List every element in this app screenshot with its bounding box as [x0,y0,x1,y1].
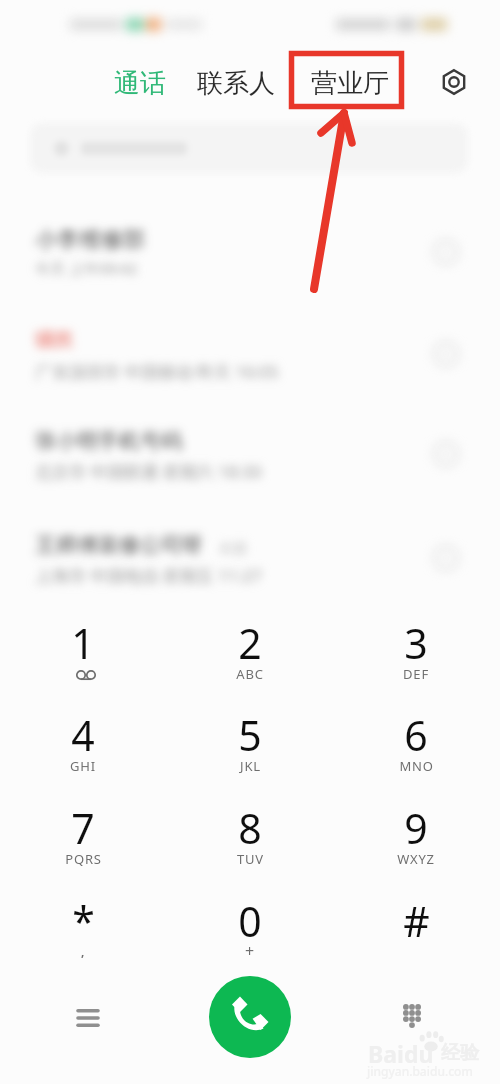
button[interactable]: Menu [67,997,108,1038]
staticText: 王师傅装修公司呀 [35,532,203,558]
staticText: 0 [238,893,262,949]
button[interactable]: Settings [438,66,470,98]
staticText: DEF [403,665,429,683]
staticText: 张小明手机号码 [35,428,182,454]
staticText: PQRS [65,850,102,868]
staticText: 1 [71,615,95,671]
staticText: 6 [404,707,428,763]
button[interactable]: 营业厅 [311,67,389,100]
button[interactable]: 2 [190,599,310,685]
staticText: * [72,893,95,949]
staticText: 5 [238,707,262,763]
button[interactable]: 骚扰 [0,310,500,410]
button[interactable]: 6 [356,691,476,777]
button[interactable]: 5 [190,691,310,777]
button[interactable]: 通话 [114,67,166,100]
staticText: + [245,940,255,958]
staticText: 2 [238,615,262,671]
button[interactable]: 9 [356,784,476,870]
staticText: TUV [237,850,264,868]
staticText: 9 [404,800,428,856]
staticText: 7 [71,800,95,856]
button[interactable]: 0 [190,877,310,963]
button[interactable]: # [356,877,476,963]
button[interactable]: 联系人 [197,67,275,100]
staticText: WXYZ [397,850,435,868]
staticText: 3 [404,615,428,671]
staticText: 小李维修部 [35,226,145,254]
staticText: 联系人 [197,67,275,100]
button[interactable]: Dialpad [391,995,433,1037]
button[interactable]: 4 [23,691,143,777]
button[interactable]: 3 [356,599,476,685]
staticText: , [80,940,86,958]
staticText: 未接 [219,540,247,558]
staticText: jingyan.baidu.com [367,1063,473,1079]
staticText: 8 [238,800,262,856]
staticText: JKL [240,757,261,775]
staticText: 经验 [441,1041,479,1065]
staticText: 上海市 中国电信 星期五 11:27 [35,564,262,587]
staticText: 通话 [114,67,166,100]
button[interactable]: 1 [23,599,143,685]
staticText: 广东深圳市 中国移动 昨天 16:05 [35,360,279,383]
staticText: GHI [70,757,96,775]
staticText: 骚扰 [35,328,73,352]
staticText: 营业厅 [311,67,389,100]
staticText: 4 [71,707,95,763]
button[interactable]: * [23,877,143,963]
staticText: MNO [399,757,434,775]
staticText: ABC [236,665,264,683]
staticText: 今天 上午09:42 [35,258,138,278]
staticText: Baidu [368,1038,434,1069]
staticText: # [403,893,430,949]
staticText: 北京市 中国联通 星期六 18:30 [35,460,262,483]
button[interactable]: 王师傅装修公司呀 [0,514,500,614]
button[interactable]: 小李维修部 [0,208,500,308]
button[interactable]: Call [209,976,291,1058]
button[interactable]: 张小明手机号码 [0,410,500,510]
button[interactable]: 8 [190,784,310,870]
button[interactable]: 7 [23,784,143,870]
button[interactable] [30,123,468,173]
